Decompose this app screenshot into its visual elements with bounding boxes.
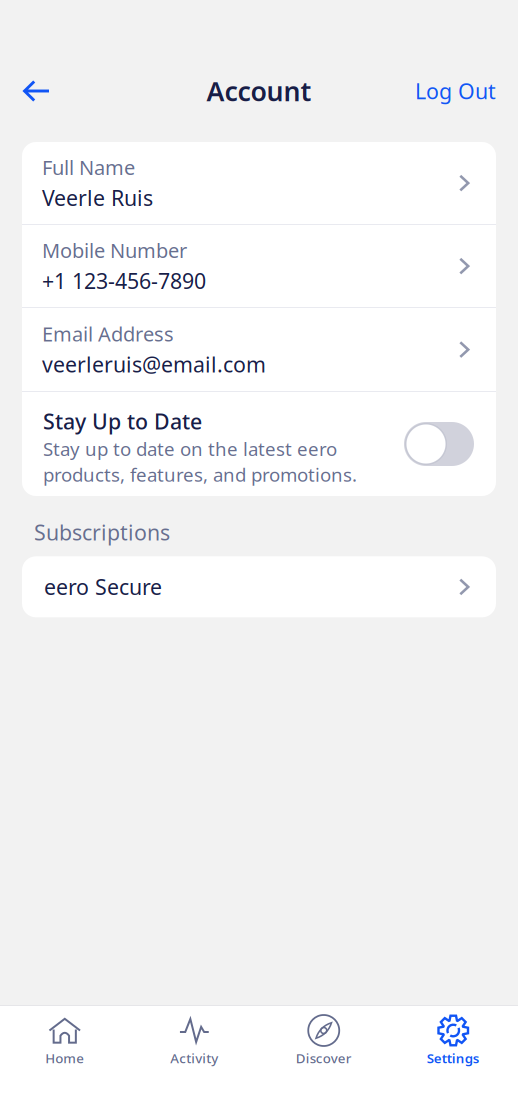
staticText: Stay Up to Date [43,407,202,435]
staticText: Settings [427,1049,480,1067]
staticText: +1 123-456-7890 [42,267,206,295]
button[interactable]: Activity [129,1006,259,1072]
staticText: Log Out [415,77,496,105]
staticText: Activity [170,1049,218,1067]
staticText: Home [45,1049,84,1067]
staticText: Email Address [42,321,174,347]
staticText: veerleruis@email.com [42,350,266,378]
button[interactable]: Back [0,63,68,119]
button[interactable]: Full Name [22,142,496,224]
button[interactable]: Email Address [22,308,496,391]
staticText: products, features, and promotions. [43,462,357,487]
button[interactable]: Stay Up to Date [404,422,474,466]
staticText: Stay up to date on the latest eero [43,436,337,461]
button[interactable]: eero Secure [0,556,518,617]
staticText: Discover [296,1049,352,1067]
button[interactable]: Discover [259,1006,388,1072]
staticText: eero Secure [44,573,162,601]
button[interactable]: Log Out [397,63,518,119]
staticText: Subscriptions [34,518,170,546]
staticText: Mobile Number [42,237,187,264]
staticText: Veerle Ruis [42,184,153,212]
button[interactable]: Settings [388,1006,518,1072]
staticText: Account [206,73,311,109]
staticText: Full Name [42,154,135,181]
button[interactable]: Home [0,1006,129,1072]
button[interactable]: Mobile Number [22,225,496,307]
